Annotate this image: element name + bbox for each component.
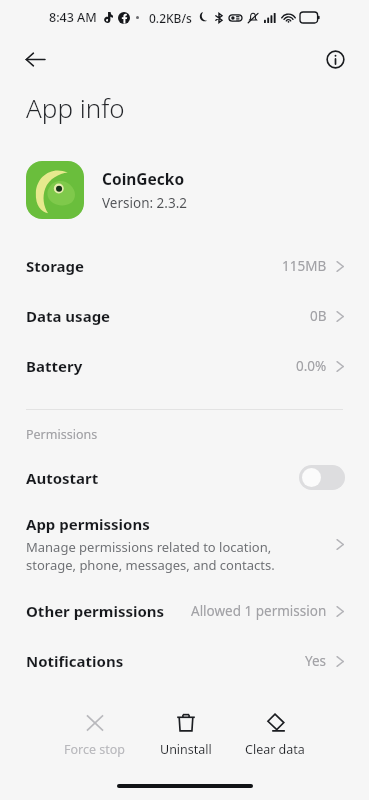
staticText: Version: 2.3.2 [102,194,188,212]
button[interactable]: Notifications [0,636,369,686]
staticText: Battery [26,356,83,376]
button[interactable]: Autostart [0,453,369,502]
button[interactable]: Uninstall [154,708,218,762]
other: Autostart toggle, off [299,465,345,490]
button[interactable]: Battery [0,341,369,391]
staticText: App permissions [26,514,150,534]
staticText: Uninstall [160,741,212,758]
button[interactable]: Clear data [239,708,311,762]
staticText: Force stop [64,741,126,758]
button[interactable]: Data usage [0,291,369,341]
staticText: Other permissions [26,601,165,621]
staticText: Clear data [245,741,305,758]
button[interactable]: App details [315,39,355,79]
button[interactable]: Other permissions [0,586,369,636]
staticText: App info [26,90,125,125]
staticText: 0.0% [296,357,327,375]
button[interactable]: Storage [0,241,369,291]
staticText: Notifications [26,651,124,671]
staticText: Autostart [26,468,99,488]
staticText: Permissions [26,426,98,443]
staticText: 0.2KB/s [149,10,192,26]
button[interactable]: Force stop [58,708,132,762]
button[interactable]: Back [14,38,56,80]
button[interactable]: App permissions [0,502,369,586]
staticText: CoinGecko [102,168,185,189]
staticText: Manage permissions related to location, … [26,538,324,574]
staticText: 8:43 AM [49,9,97,26]
staticText: Data usage [26,306,111,326]
staticText: Storage [26,256,84,276]
staticText: 115MB [282,257,327,275]
staticText: Yes [305,652,327,670]
staticText: Allowed 1 permission [191,602,327,620]
staticText: 0B [310,307,327,325]
